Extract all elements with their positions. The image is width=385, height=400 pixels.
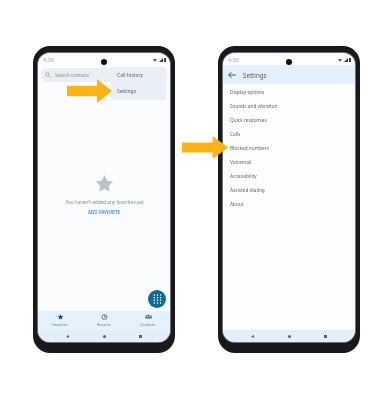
button[interactable]: ADD FAVORITE [88,209,121,215]
staticText: Voicemail [230,159,252,165]
staticText: 4:36 [228,56,239,63]
button[interactable]: Back [226,69,237,80]
button[interactable]: Display options [223,85,355,99]
button[interactable]: Home [101,333,108,340]
staticText: Search contacts [55,72,89,78]
button[interactable]: Back [64,333,71,340]
button[interactable]: Voicemail [223,155,355,169]
button[interactable]: Recents [137,333,144,340]
button[interactable]: Home [286,333,293,340]
staticText: You haven't added any favorites yet [65,199,144,205]
staticText: Accessibility [230,173,257,179]
button[interactable]: Favorites [38,311,82,330]
staticText: Quick responses [230,117,267,123]
staticText: Settings [117,88,137,95]
button[interactable]: Contacts [126,311,170,330]
button[interactable]: Settings [111,83,166,100]
staticText: Display options [230,89,265,95]
button[interactable]: Sounds and vibration [223,99,355,113]
button[interactable]: Dialpad [148,290,166,308]
staticText: Assisted dialing [230,187,265,193]
staticText: Call history [117,72,144,79]
button[interactable]: Calls [223,127,355,141]
staticText: Recents [97,322,111,327]
button[interactable]: Back [249,333,256,340]
button[interactable]: Blocked numbers [223,141,355,155]
button[interactable]: Accessibility [223,169,355,183]
staticText: Favorites [52,322,68,327]
button[interactable]: Assisted dialing [223,183,355,197]
staticText: Blocked numbers [230,145,269,151]
staticText: Contacts [140,322,156,327]
button[interactable]: Recents [82,311,126,330]
staticText: 4:36 [43,56,54,63]
staticText: About [230,201,244,207]
button[interactable]: Recents [322,333,329,340]
staticText: Sounds and vibration [230,103,278,109]
button[interactable]: Quick responses [223,113,355,127]
staticText: Settings [243,71,267,79]
button[interactable]: Search contacts [41,68,167,82]
button[interactable]: Call history [111,67,166,83]
button[interactable]: About [223,197,355,211]
staticText: Calls [230,131,241,137]
